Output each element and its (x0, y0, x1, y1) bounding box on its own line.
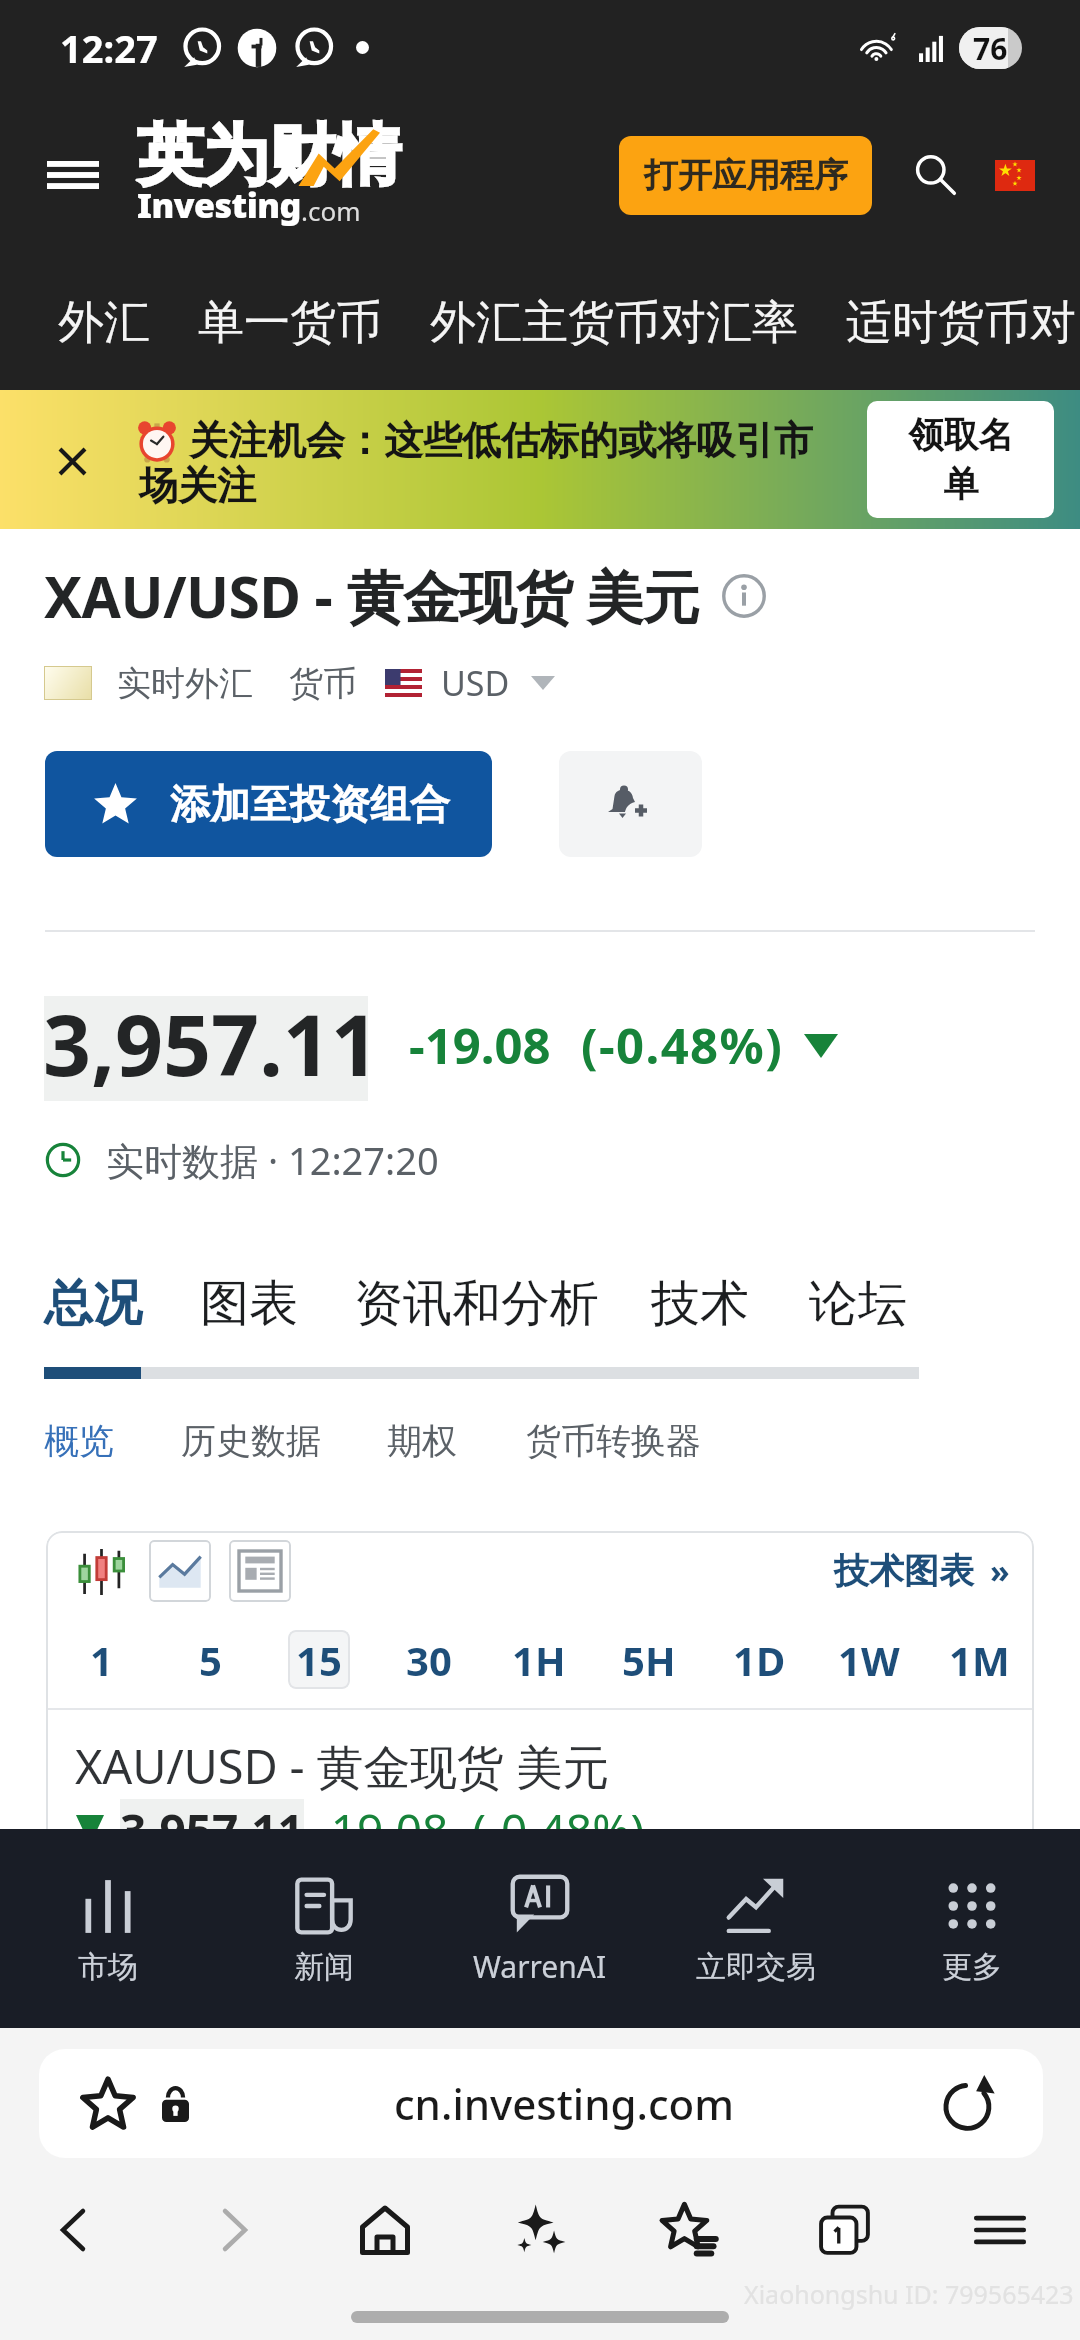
staticText: 适时货币对 (846, 294, 1076, 352)
button[interactable]: Language (995, 160, 1035, 191)
button[interactable]: Close (60, 449, 85, 474)
button[interactable]: 15 (288, 1630, 350, 1689)
button[interactable]: Bookmarks (655, 2195, 725, 2265)
button[interactable]: Search (912, 152, 959, 199)
staticText: 新闻 (294, 1948, 354, 1986)
button[interactable]: 概览 (44, 1419, 114, 1463)
staticText: 15 (296, 1633, 342, 1687)
button[interactable]: cn.investing.com (39, 2049, 1043, 2158)
staticText: 打开应用程序 (644, 154, 848, 197)
staticText: 图表 (200, 1273, 298, 1335)
button[interactable]: 历史数据 (181, 1419, 321, 1463)
staticText: 1D (733, 1633, 786, 1687)
staticText: XAU/USD - 黄金现货 美元 (75, 1734, 610, 1798)
button[interactable]: 资讯和分析 (354, 1273, 599, 1335)
button[interactable]: Back (40, 2195, 110, 2265)
staticText: 5H (622, 1633, 676, 1687)
staticText: 货币 (289, 662, 357, 705)
staticText: USD (441, 660, 510, 706)
staticText: 外汇主货币对汇率 (430, 294, 798, 352)
staticText: cn.investing.com (394, 2075, 734, 2132)
button[interactable]: 货币转换器 (526, 1419, 701, 1463)
button[interactable]: 5H (618, 1630, 680, 1689)
staticText: (-0.48%) (581, 1012, 784, 1079)
button[interactable]: 外汇主货币对汇率 (430, 294, 798, 352)
staticText: -19.08 (409, 1012, 551, 1079)
staticText: 论坛 (809, 1273, 907, 1335)
staticText: Investing (137, 182, 301, 228)
button[interactable]: 1 (70, 1630, 132, 1689)
button[interactable]: 1D (728, 1630, 790, 1689)
button[interactable]: 打开应用程序 (619, 136, 872, 215)
button[interactable]: 适时货币对 (846, 294, 1076, 352)
button[interactable]: 技术 (651, 1273, 749, 1335)
staticText: 实时数据 · 12:27:20 (106, 1134, 439, 1186)
staticText: 资讯和分析 (354, 1273, 599, 1335)
staticText: 30 (406, 1633, 452, 1687)
staticText: 历史数据 (181, 1419, 321, 1463)
staticText: » (990, 1549, 1010, 1593)
staticText: 期权 (387, 1419, 457, 1463)
button[interactable]: WarrenAI (432, 1834, 648, 2028)
button[interactable]: News (229, 1540, 291, 1602)
staticText: 1W (838, 1633, 900, 1687)
button[interactable]: Tabs (810, 2195, 880, 2265)
staticText: 单一货币 (198, 294, 382, 352)
staticText: 立即交易 (696, 1948, 816, 1986)
staticText: 技术 (651, 1273, 749, 1335)
button[interactable]: Home (350, 2195, 420, 2265)
button[interactable]: Menu (35, 137, 111, 213)
staticText: 1M (949, 1633, 1010, 1687)
button[interactable]: 5 (179, 1630, 241, 1689)
button[interactable]: 图表 (200, 1273, 298, 1335)
staticText: 技术图表 (834, 1549, 974, 1593)
button[interactable]: 更多 (864, 1834, 1080, 2028)
staticText: .com (301, 193, 361, 228)
staticText: 76 (973, 28, 1008, 69)
staticText: 5 (199, 1633, 222, 1687)
button[interactable]: 总况 (44, 1273, 142, 1335)
button[interactable]: 立即交易 (648, 1834, 864, 2028)
button[interactable]: 外汇 (58, 294, 150, 352)
staticText: 更多 (942, 1948, 1002, 1986)
staticText: 12:27 (60, 22, 158, 74)
staticText: 3,957.11 (43, 986, 379, 1100)
staticText: 实时外汇 (117, 662, 253, 705)
button[interactable]: Menu (965, 2195, 1035, 2265)
button[interactable]: 论坛 (809, 1273, 907, 1335)
button[interactable]: 1M (948, 1630, 1010, 1689)
staticText: 添加至投资组合 (170, 779, 450, 829)
button[interactable]: Forward (198, 2195, 268, 2265)
staticText: 英为财情 (137, 114, 401, 197)
staticText: 1 (90, 1633, 113, 1687)
staticText: 货币转换器 (526, 1419, 701, 1463)
button[interactable]: 新闻 (216, 1834, 432, 2028)
staticText: 总况 (44, 1273, 142, 1335)
staticText: 1H (512, 1633, 566, 1687)
button[interactable]: Line chart (149, 1540, 211, 1602)
staticText: 领取名单 (907, 413, 1015, 507)
staticText: -19.08 (-0.48%) (316, 1799, 645, 1861)
staticText: 场关注 (139, 461, 256, 510)
staticText: WarrenAI (473, 1946, 607, 1987)
button[interactable]: 1W (838, 1630, 900, 1689)
button[interactable]: 领取名单 (867, 401, 1054, 518)
button[interactable]: 期权 (387, 1419, 457, 1463)
button[interactable]: 添加至投资组合 (45, 751, 492, 857)
staticText: 市场 (78, 1948, 138, 1986)
button[interactable]: Create alert (559, 751, 702, 857)
staticText: 外汇 (58, 294, 150, 352)
button[interactable]: 技术图表 (834, 1549, 1010, 1593)
staticText: XAU/USD - 黄金现货 美元 (44, 557, 700, 635)
staticText: 关注机会：这些低估标的或将吸引市 (189, 416, 813, 465)
button[interactable]: 单一货币 (198, 294, 382, 352)
staticText: 3,957.11 (120, 1799, 304, 1861)
staticText: 概览 (44, 1419, 114, 1463)
staticText: Xiaohongshu ID: 799565423 (744, 2277, 1074, 2311)
button[interactable]: 1H (508, 1630, 570, 1689)
button[interactable]: AI assistant (505, 2195, 575, 2265)
button[interactable]: 市场 (0, 1834, 216, 2028)
button[interactable]: 30 (398, 1630, 460, 1689)
